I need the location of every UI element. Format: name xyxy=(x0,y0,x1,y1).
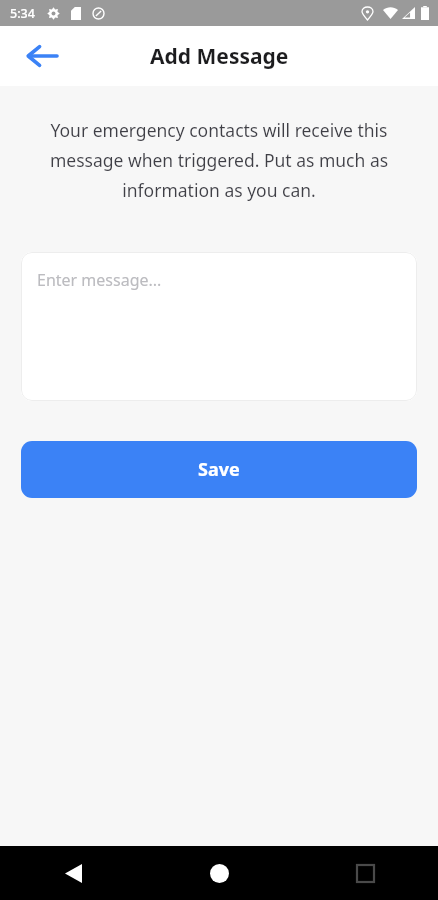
button[interactable]: Back xyxy=(22,36,62,76)
staticText: 5:34 xyxy=(10,5,35,22)
button[interactable]: Home xyxy=(146,846,292,900)
staticText: Add Message xyxy=(150,42,289,71)
button[interactable]: Recent apps xyxy=(292,846,438,900)
staticText: Enter message... xyxy=(37,269,162,291)
button[interactable]: Save xyxy=(21,441,417,498)
staticText: Save xyxy=(198,457,240,482)
staticText: Your emergency contacts will receive thi… xyxy=(26,118,412,202)
button[interactable]: Back xyxy=(0,846,146,900)
button[interactable]: Enter message... xyxy=(21,252,417,401)
